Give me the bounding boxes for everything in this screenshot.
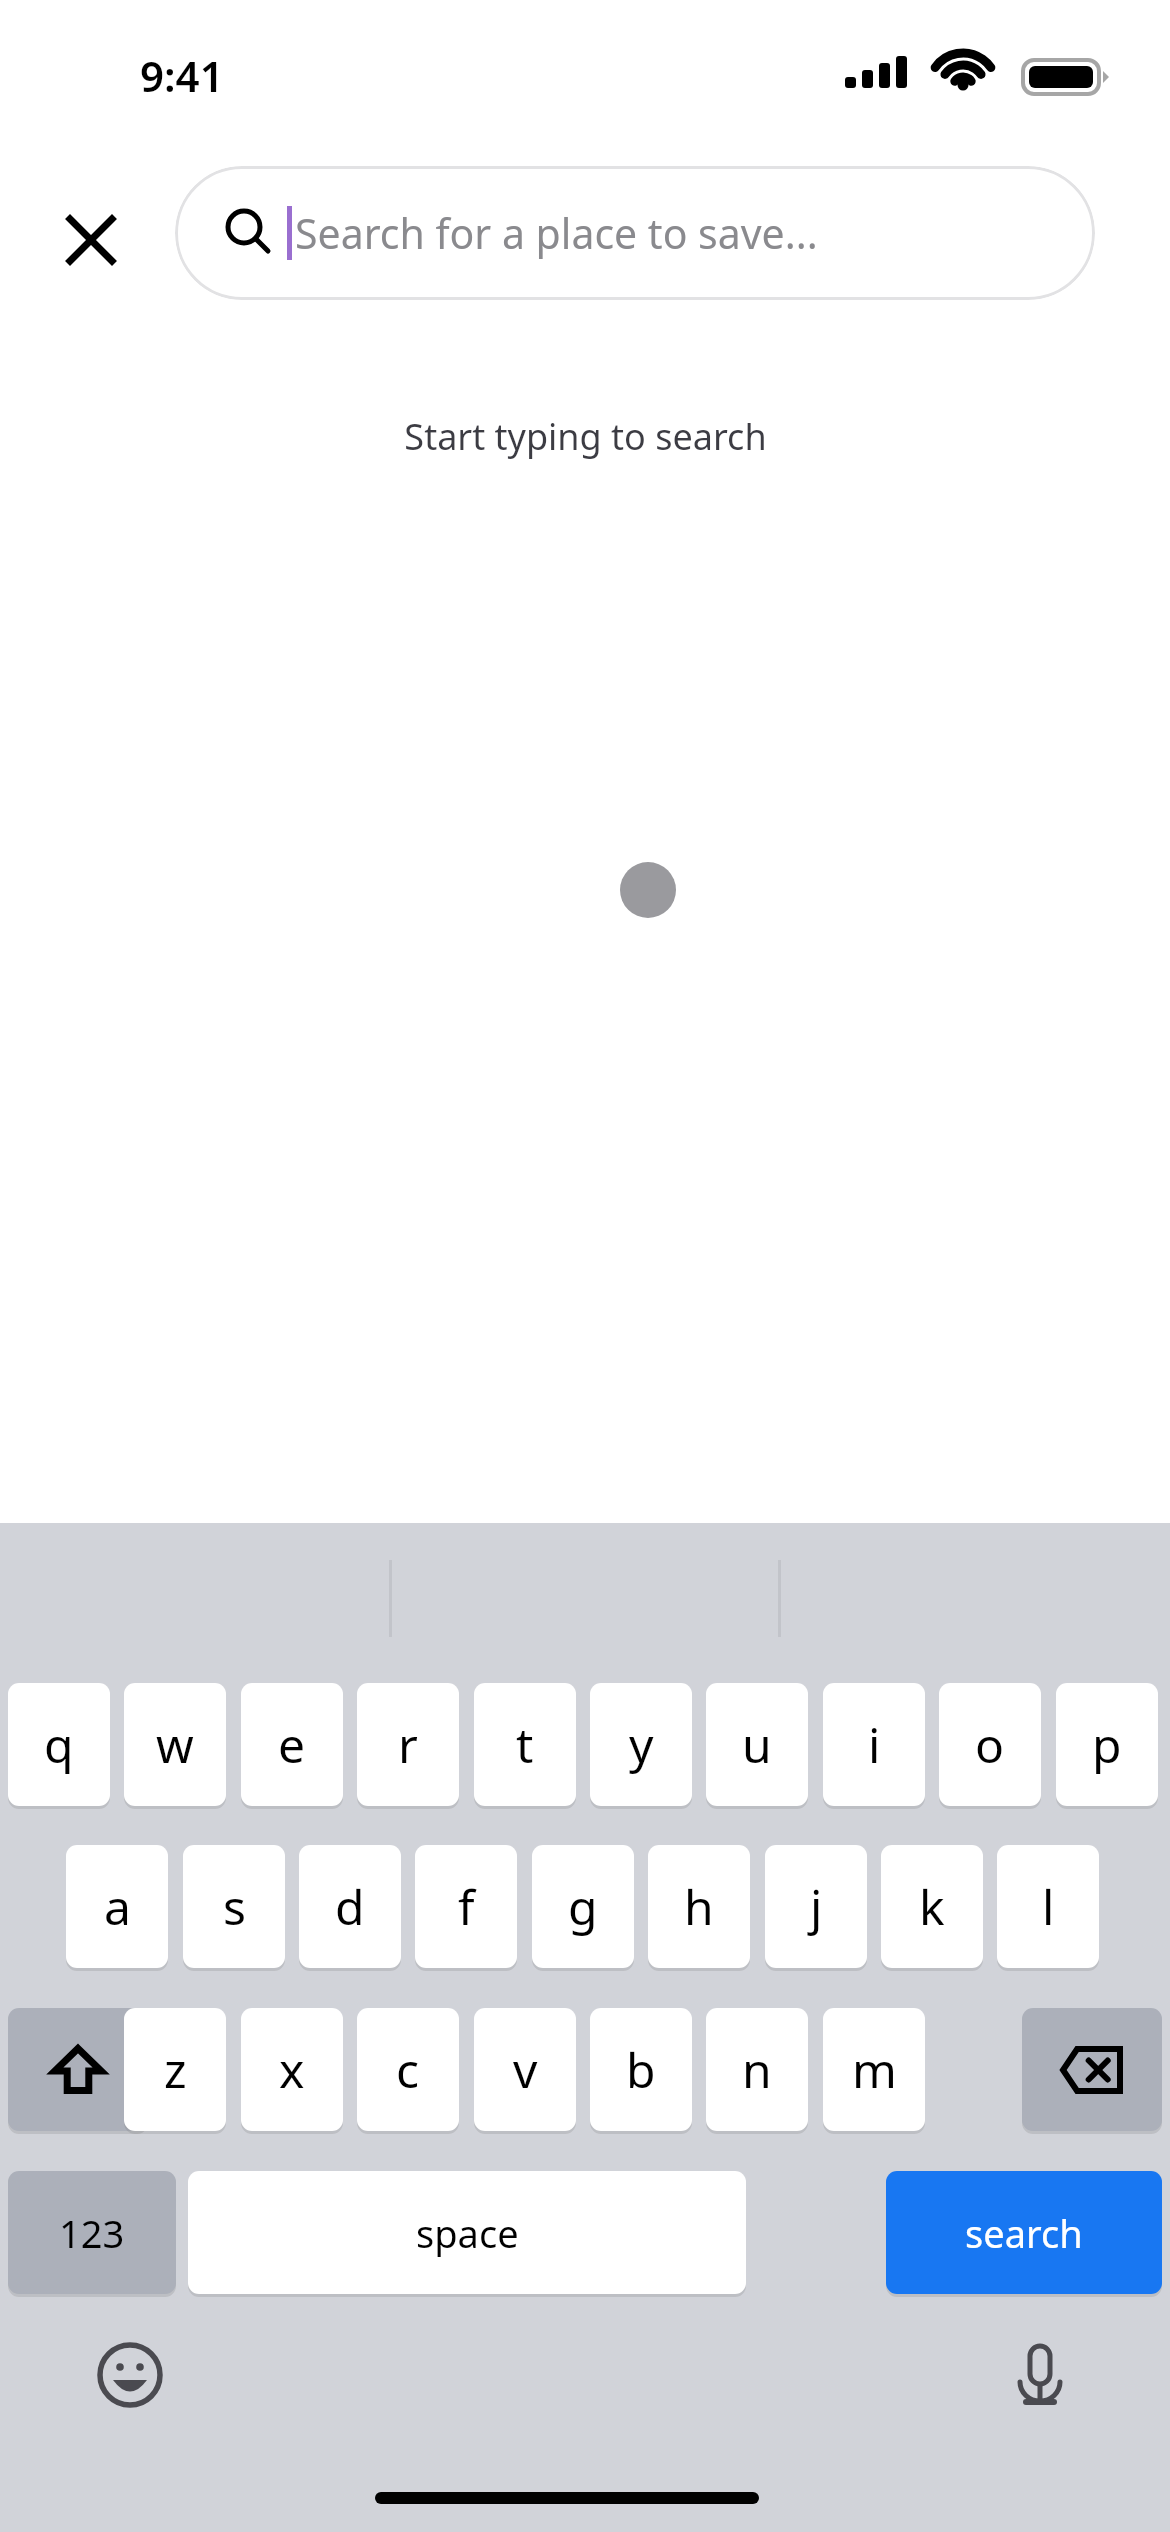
staticText: 123 xyxy=(59,2207,125,2259)
staticText: w xyxy=(156,1712,194,1777)
button[interactable]: c xyxy=(357,2008,459,2131)
button[interactable]: v xyxy=(474,2008,576,2131)
button[interactable]: Backspace xyxy=(1022,2008,1162,2131)
button[interactable]: n xyxy=(706,2008,808,2131)
staticText: e xyxy=(278,1712,306,1777)
staticText: q xyxy=(44,1712,74,1777)
button[interactable]: Shift xyxy=(8,2008,148,2131)
button[interactable]: d xyxy=(299,1845,401,1968)
button[interactable]: space xyxy=(188,2171,746,2294)
button[interactable]: s xyxy=(183,1845,285,1968)
button[interactable]: b xyxy=(590,2008,692,2131)
staticText: x xyxy=(279,2037,305,2102)
staticText: z xyxy=(164,2037,187,2102)
staticText: a xyxy=(104,1874,131,1939)
button[interactable]: k xyxy=(881,1845,983,1968)
staticText: r xyxy=(398,1712,418,1777)
button[interactable]: x xyxy=(241,2008,343,2131)
staticText: Start typing to search xyxy=(404,412,767,461)
button[interactable]: q xyxy=(8,1683,110,1806)
staticText: l xyxy=(1042,1874,1055,1939)
staticText: g xyxy=(568,1874,598,1939)
button[interactable]: p xyxy=(1056,1683,1158,1806)
staticText: c xyxy=(396,2037,420,2102)
staticText: k xyxy=(919,1874,945,1939)
button[interactable]: Search for a place to save... xyxy=(175,166,1095,300)
button[interactable]: y xyxy=(590,1683,692,1806)
staticText: p xyxy=(1092,1712,1122,1777)
button[interactable]: h xyxy=(648,1845,750,1968)
staticText: n xyxy=(742,2037,772,2102)
staticText: Search for a place to save... xyxy=(295,205,818,261)
button[interactable]: t xyxy=(474,1683,576,1806)
button[interactable]: Voice input xyxy=(988,2323,1092,2427)
staticText: 9:41 xyxy=(140,47,224,104)
button[interactable]: search xyxy=(886,2171,1162,2294)
staticText: s xyxy=(223,1874,246,1939)
staticText: v xyxy=(513,2037,538,2102)
staticText: h xyxy=(684,1874,714,1939)
button[interactable]: i xyxy=(823,1683,925,1806)
button[interactable]: r xyxy=(357,1683,459,1806)
staticText: space xyxy=(416,2207,519,2259)
staticText: o xyxy=(975,1712,1005,1777)
staticText: d xyxy=(335,1874,365,1939)
button[interactable]: u xyxy=(706,1683,808,1806)
staticText: i xyxy=(868,1712,881,1777)
staticText: b xyxy=(626,2037,656,2102)
staticText: y xyxy=(629,1712,654,1777)
button[interactable]: o xyxy=(939,1683,1041,1806)
button[interactable]: Emoji keyboard xyxy=(78,2323,182,2427)
button[interactable]: e xyxy=(241,1683,343,1806)
button[interactable]: g xyxy=(532,1845,634,1968)
staticText: search xyxy=(965,2207,1083,2259)
button[interactable]: m xyxy=(823,2008,925,2131)
button[interactable]: w xyxy=(124,1683,226,1806)
button[interactable]: l xyxy=(997,1845,1099,1968)
button[interactable]: a xyxy=(66,1845,168,1968)
button[interactable]: Close xyxy=(45,194,137,286)
button[interactable]: 123 xyxy=(8,2171,176,2294)
staticText: u xyxy=(742,1712,772,1777)
staticText: f xyxy=(458,1874,475,1939)
button[interactable]: f xyxy=(415,1845,517,1968)
button[interactable]: j xyxy=(765,1845,867,1968)
button[interactable]: z xyxy=(124,2008,226,2131)
staticText: m xyxy=(852,2037,897,2102)
staticText: t xyxy=(516,1712,534,1777)
staticText: j xyxy=(810,1874,823,1939)
